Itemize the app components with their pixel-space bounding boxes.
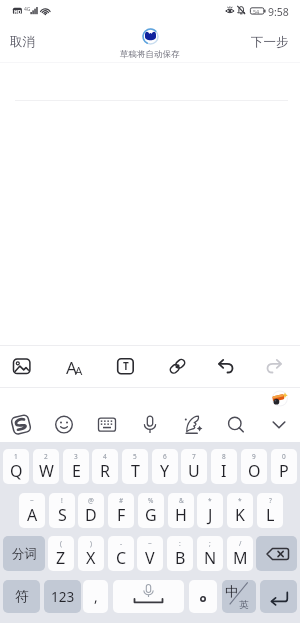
button[interactable]: 0 [271, 449, 297, 484]
staticText: ! [61, 496, 63, 505]
staticText: O [248, 460, 261, 482]
button[interactable]: * [197, 493, 223, 528]
button[interactable]: Hide keyboard [266, 401, 294, 441]
staticText: ~ [148, 539, 152, 548]
staticText: 0 [282, 452, 286, 461]
staticText: T [131, 460, 140, 482]
button[interactable]: / [227, 536, 253, 571]
button[interactable]: Text style [62, 353, 88, 379]
button[interactable]: ; [197, 536, 223, 571]
staticText: / [239, 539, 242, 548]
staticText: 2 [44, 452, 48, 461]
staticText: N [204, 547, 217, 569]
button[interactable]: @ [78, 493, 104, 528]
staticText: 1 [14, 452, 18, 461]
staticText: @ [88, 496, 94, 505]
staticText: ~ [30, 496, 34, 505]
button[interactable]: Voice input [137, 401, 165, 441]
button[interactable]: % [138, 493, 164, 528]
button[interactable]: 8 [211, 449, 237, 484]
button[interactable]: ~ [19, 493, 45, 528]
button[interactable]: ! [49, 493, 75, 528]
staticText: Y [160, 460, 170, 482]
staticText: 123 [51, 588, 75, 606]
staticText: 8 [222, 452, 226, 461]
button[interactable]: : [167, 536, 193, 571]
staticText: Q [10, 460, 23, 482]
staticText: 7 [192, 452, 196, 461]
button[interactable]: Insert image [10, 345, 34, 387]
staticText: # [119, 496, 124, 505]
button[interactable]: 下一步 [237, 26, 300, 58]
staticText: 4 [103, 452, 107, 461]
button[interactable]: Chinese English toggle [222, 580, 256, 613]
staticText: 取消 [10, 34, 35, 50]
staticText: 下一步 [251, 34, 289, 50]
button[interactable]: , [83, 580, 108, 613]
staticText: 6 [163, 452, 167, 461]
staticText: F [117, 504, 126, 526]
staticText: 英 [239, 599, 249, 611]
button[interactable]: 5 [122, 449, 148, 484]
button[interactable]: Handwriting [180, 401, 208, 441]
button[interactable]: - [108, 536, 134, 571]
staticText: 中 [225, 583, 239, 600]
button[interactable]: Insert link [163, 345, 187, 387]
staticText: A [75, 363, 83, 379]
button[interactable]: 6 [152, 449, 178, 484]
staticText: ; [209, 539, 211, 548]
staticText: 4G [24, 6, 31, 13]
button[interactable]: ( [48, 536, 74, 571]
button[interactable]: Redo [264, 345, 288, 387]
staticText: U [188, 460, 200, 482]
button[interactable]: # [108, 493, 134, 528]
button[interactable]: Period [189, 580, 217, 613]
staticText: 符 [15, 588, 29, 605]
button[interactable]: Enter [260, 580, 297, 613]
button[interactable]: Search [223, 401, 251, 441]
staticText: HD [14, 9, 22, 16]
button[interactable]: Draft auto save [120, 28, 180, 60]
button[interactable]: & [168, 493, 194, 528]
button[interactable]: Space [113, 580, 184, 613]
button[interactable]: Emoji [51, 401, 79, 441]
button[interactable]: Keyboard [94, 401, 122, 441]
staticText: P [279, 460, 289, 482]
button[interactable]: 1 [3, 449, 29, 484]
button[interactable]: 4 [92, 449, 118, 484]
button[interactable]: 符 [3, 580, 40, 613]
staticText: D [85, 504, 97, 526]
staticText: K [235, 504, 245, 526]
button[interactable]: 2 [33, 449, 59, 484]
button[interactable]: ~ [137, 536, 163, 571]
staticText: 草稿将自动保存 [120, 49, 180, 60]
staticText: B [175, 547, 186, 569]
button[interactable]: * [227, 493, 253, 528]
staticText: T [123, 359, 129, 373]
staticText: , [94, 588, 98, 606]
button[interactable]: 取消 [0, 26, 49, 58]
button[interactable]: Sogou input [8, 401, 36, 441]
staticText: 3 [74, 452, 78, 461]
button[interactable]: ? [257, 493, 283, 528]
staticText: W [39, 460, 54, 482]
staticText: % [148, 496, 154, 505]
staticText: V [145, 547, 155, 569]
button[interactable]: Undo [214, 345, 238, 387]
button[interactable]: ) [78, 536, 104, 571]
button[interactable]: 7 [181, 449, 207, 484]
staticText: A [27, 504, 38, 526]
staticText: ( [60, 539, 62, 548]
staticText: * [208, 496, 212, 505]
button[interactable]: Title [114, 354, 137, 377]
button[interactable]: Backspace [256, 536, 297, 571]
staticText: : [179, 539, 181, 548]
button[interactable]: 分词 [3, 536, 45, 571]
staticText: A [66, 356, 77, 379]
button[interactable]: 9 [241, 449, 267, 484]
staticText: 5 [133, 452, 137, 461]
button[interactable]: 123 [44, 580, 81, 613]
button[interactable]: 3 [63, 449, 89, 484]
staticText: 54 [253, 8, 260, 15]
staticText: I [221, 460, 227, 482]
